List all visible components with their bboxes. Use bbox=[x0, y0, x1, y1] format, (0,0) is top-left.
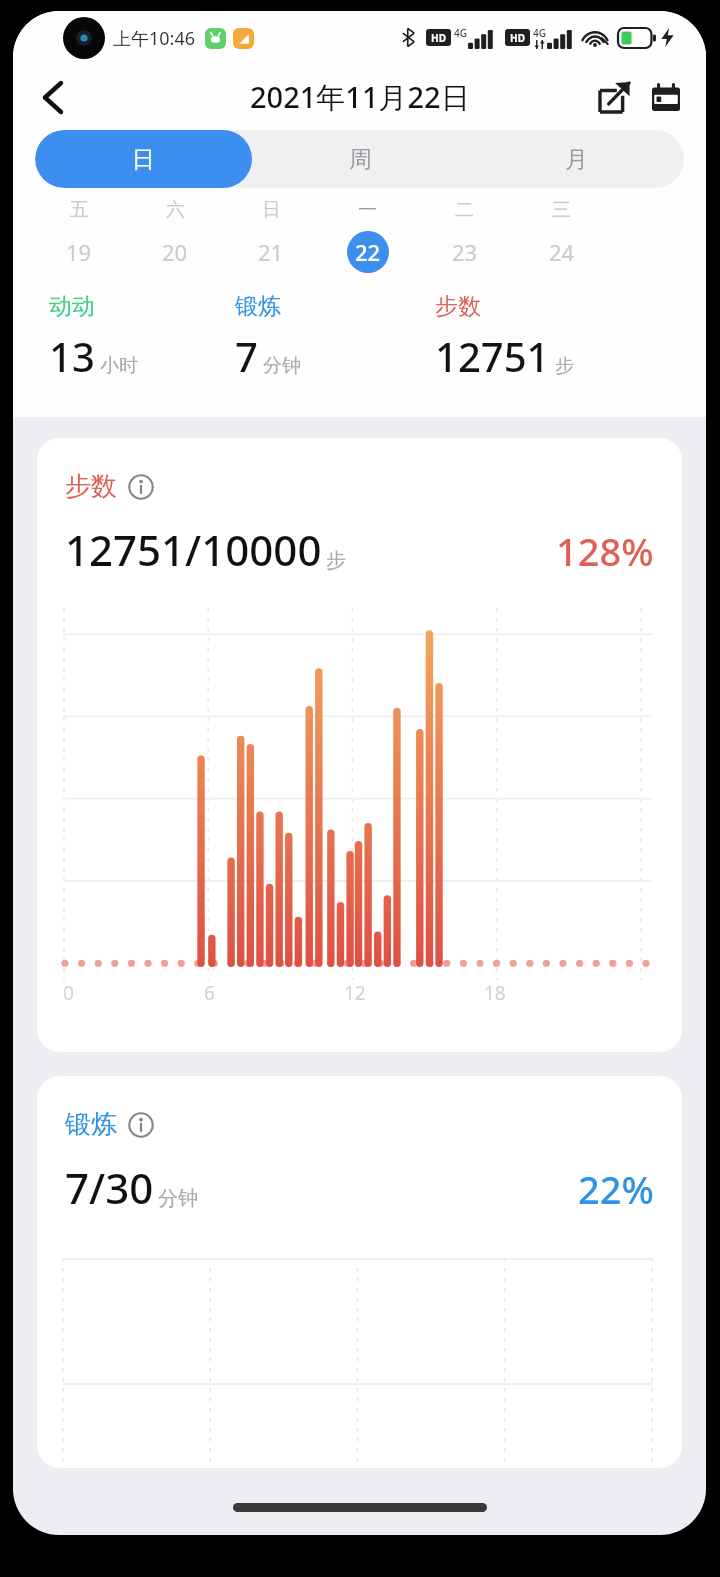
button[interactable]: 一 bbox=[319, 198, 416, 273]
staticText: 22% bbox=[578, 1163, 654, 1215]
staticText: 锻炼 bbox=[65, 1108, 117, 1141]
button[interactable]: 锻炼 bbox=[235, 292, 435, 383]
staticText: 分钟 bbox=[263, 354, 301, 378]
staticText: 22 bbox=[355, 237, 381, 267]
staticText: 18 bbox=[484, 980, 506, 1006]
staticText: 二 bbox=[455, 198, 474, 222]
staticText: 分钟 bbox=[158, 1186, 198, 1211]
button[interactable]: 锻炼 bbox=[37, 1076, 682, 1468]
staticText: 锻炼 bbox=[235, 292, 281, 321]
staticText: 7 bbox=[235, 329, 258, 383]
staticText: 12751 bbox=[435, 329, 550, 383]
staticText: 五 bbox=[70, 198, 89, 222]
button[interactable]: 月 bbox=[468, 130, 684, 188]
button[interactable]: 动动 bbox=[49, 292, 235, 383]
staticText: HD bbox=[510, 31, 525, 45]
staticText: 12 bbox=[344, 980, 366, 1006]
staticText: 步数 bbox=[435, 292, 481, 321]
button[interactable]: 步数 bbox=[37, 438, 682, 1052]
button[interactable]: 步数 bbox=[435, 292, 706, 383]
staticText: 13 bbox=[49, 329, 95, 383]
staticText: 上午10:46 bbox=[113, 26, 196, 51]
button[interactable]: Share bbox=[588, 71, 640, 123]
staticText: 周 bbox=[349, 145, 372, 174]
staticText: 三 bbox=[552, 198, 571, 222]
staticText: 19 bbox=[66, 237, 92, 267]
staticText: HD bbox=[431, 31, 446, 45]
staticText: 12751/10000 bbox=[65, 521, 322, 578]
staticText: 日 bbox=[132, 145, 155, 174]
staticText: 6 bbox=[204, 980, 215, 1006]
button[interactable]: 周 bbox=[252, 130, 468, 188]
staticText: 步数 bbox=[65, 470, 117, 503]
staticText: 动动 bbox=[49, 292, 95, 321]
staticText: 一 bbox=[358, 198, 377, 222]
button[interactable]: 二 bbox=[416, 198, 513, 273]
staticText: 128% bbox=[556, 525, 654, 577]
staticText: 21 bbox=[258, 237, 284, 267]
staticText: 六 bbox=[166, 198, 185, 222]
staticText: 20 bbox=[162, 237, 188, 267]
staticText: 7/30 bbox=[65, 1159, 154, 1216]
button[interactable]: Back bbox=[27, 71, 79, 123]
button[interactable]: 六 bbox=[127, 198, 223, 273]
staticText: 0 bbox=[63, 980, 74, 1006]
staticText: 24 bbox=[549, 237, 575, 267]
button[interactable]: 日 bbox=[223, 198, 319, 273]
staticText: 2021年11月22日 bbox=[250, 77, 470, 117]
staticText: 日 bbox=[262, 198, 281, 222]
button[interactable]: 五 bbox=[31, 198, 127, 273]
staticText: 小时 bbox=[100, 354, 138, 378]
staticText: 23 bbox=[452, 237, 478, 267]
staticText: 月 bbox=[565, 145, 588, 174]
button[interactable]: 三 bbox=[513, 198, 610, 273]
staticText: 步 bbox=[555, 354, 574, 378]
staticText: 4G bbox=[454, 26, 467, 40]
staticText: 步 bbox=[326, 548, 346, 573]
button[interactable]: Calendar bbox=[640, 71, 692, 123]
staticText: 4G bbox=[533, 26, 546, 40]
button[interactable]: 日 bbox=[35, 130, 252, 188]
